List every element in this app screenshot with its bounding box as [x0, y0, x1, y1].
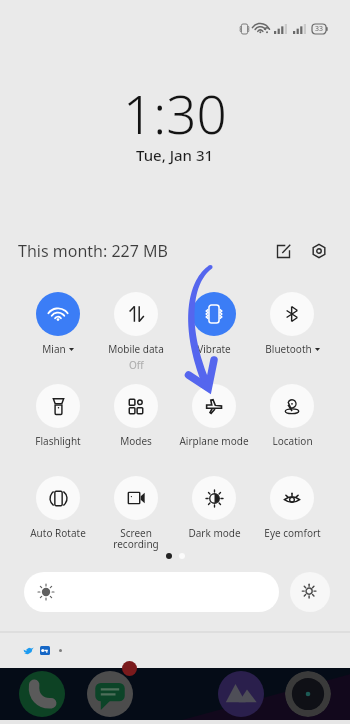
- staticText: Dark mode: [188, 526, 241, 540]
- staticText: Location: [272, 434, 313, 448]
- button[interactable]: Gallery: [218, 671, 264, 717]
- button[interactable]: Location: [253, 384, 331, 448]
- button[interactable]: Modes: [97, 384, 175, 448]
- button[interactable]: Settings: [306, 238, 332, 264]
- button[interactable]: Mian: [19, 292, 97, 356]
- staticText: Off: [129, 358, 144, 372]
- staticText: 1:30: [123, 77, 227, 149]
- button[interactable]: Auto Rotate: [19, 476, 97, 540]
- button[interactable]: Phone: [19, 671, 65, 717]
- button[interactable]: Screen recording: [97, 476, 175, 551]
- button[interactable]: Auto brightness: [290, 572, 330, 612]
- staticText: This month: 227 MB: [18, 240, 168, 262]
- button[interactable]: Brightness: [24, 572, 279, 612]
- staticText: 33: [315, 24, 324, 34]
- button[interactable]: Dark mode: [175, 476, 253, 540]
- button[interactable]: Airplane mode: [175, 384, 253, 448]
- staticText: Vibrate: [197, 342, 231, 356]
- staticText: Screen recording: [113, 526, 159, 551]
- button[interactable]: Vibrate: [175, 292, 253, 356]
- staticText: Tue, Jan 31: [136, 145, 214, 165]
- button[interactable]: Messages: [87, 671, 133, 717]
- button[interactable]: Camera: [285, 671, 331, 717]
- staticText: Airplane mode: [179, 434, 249, 448]
- button[interactable]: Mobile data: [97, 292, 175, 372]
- staticText: Mian: [42, 342, 66, 356]
- button[interactable]: Flashlight: [19, 384, 97, 448]
- staticText: Auto Rotate: [30, 526, 86, 540]
- staticText: Eye comfort: [264, 526, 321, 540]
- button[interactable]: Edit: [270, 238, 296, 264]
- staticText: Bluetooth: [265, 342, 312, 356]
- button[interactable]: Bluetooth: [253, 292, 331, 356]
- button[interactable]: Eye comfort: [253, 476, 331, 540]
- staticText: Flashlight: [35, 434, 81, 448]
- staticText: Modes: [120, 434, 152, 448]
- staticText: Mobile data: [108, 342, 164, 356]
